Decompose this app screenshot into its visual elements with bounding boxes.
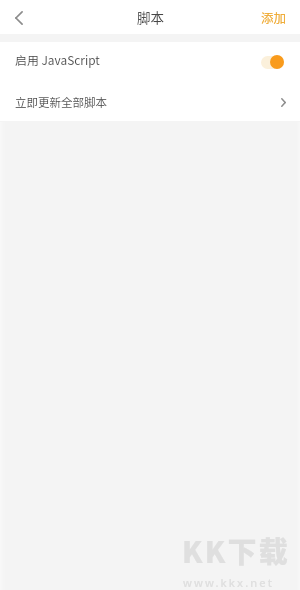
button[interactable]: Back xyxy=(0,0,38,34)
staticText: 添加 xyxy=(261,8,287,26)
staticText: 立即更新全部脚本 xyxy=(15,94,107,111)
button[interactable]: 启用 JavaScript xyxy=(0,42,300,81)
button[interactable]: 添加 xyxy=(247,0,300,34)
staticText: www.kkx.net xyxy=(183,575,274,590)
staticText: KK下载 xyxy=(182,529,290,571)
staticText: 启用 JavaScript xyxy=(15,51,100,68)
staticText: 脚本 xyxy=(137,7,164,27)
button[interactable]: 立即更新全部脚本 xyxy=(0,81,300,121)
